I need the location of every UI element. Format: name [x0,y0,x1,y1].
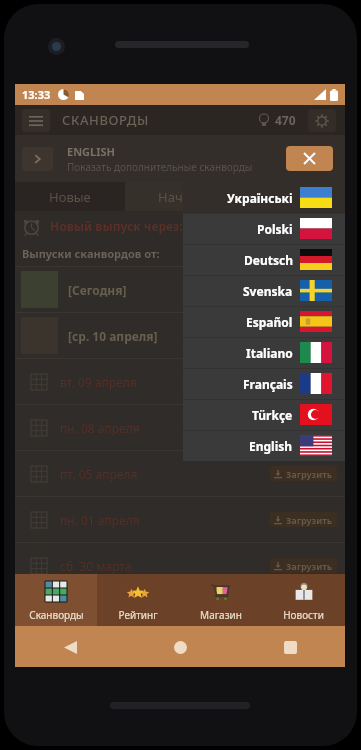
button[interactable]: Polski [183,213,345,244]
button[interactable]: [ср. 10 апреля] [15,313,345,358]
button[interactable]: [Сегодня] [15,267,345,312]
staticText: Все [279,188,301,206]
button[interactable]: Back [55,632,85,662]
staticText: Новости [283,608,324,622]
staticText: 470 [275,112,296,128]
staticText: пн. 01 апреля [60,512,140,528]
staticText: пт. 05 апреля [60,466,138,482]
staticText: Polski [257,221,293,237]
staticText: ENGLISH [67,144,115,159]
button[interactable]: пн. 01 апреля [15,497,345,542]
staticText: Загрузить [286,422,333,434]
button[interactable]: Все [235,182,345,211]
button[interactable]: Загрузить [270,466,337,481]
button[interactable]: Türkçe [183,399,345,430]
button[interactable]: сб. 30 марта [15,543,345,588]
staticText: Svenska [243,283,293,299]
staticText: Español [246,314,293,330]
staticText: вт. 09 апреля [60,374,137,390]
staticText: СКАНВОРДЫ [62,111,149,129]
staticText: 13:33 [22,87,51,102]
button[interactable]: Магазин [179,574,262,626]
staticText: Загрузить [286,560,333,572]
staticText: [ср. 10 апреля] [68,328,158,344]
staticText: Français [243,376,293,392]
button[interactable]: Загрузить [270,558,337,573]
button[interactable]: Deutsch [183,244,345,275]
staticText: Магазин [200,608,242,622]
staticText: Новые [49,188,91,206]
button[interactable]: Italiano [183,337,345,368]
button[interactable]: Загрузить [270,420,337,435]
button[interactable]: Сканворды [15,574,97,626]
button[interactable]: Рейтинг [97,574,179,626]
staticText: Türkçe [252,407,293,423]
staticText: Українські [227,190,293,206]
button[interactable]: ENGLISH [15,135,345,182]
button[interactable]: Загрузить [270,512,337,527]
staticText: English [249,438,293,454]
staticText: Рейтинг [118,608,158,622]
staticText: Italiano [246,345,293,361]
button[interactable]: Svenska [183,275,345,306]
button[interactable]: Español [183,306,345,337]
button[interactable]: English [183,430,345,461]
staticText: Загрузить [286,514,333,526]
button[interactable]: Начать [125,182,235,211]
button[interactable]: Close [286,146,333,171]
staticText: Новый выпуск через: [50,218,183,234]
button[interactable]: Menu [22,109,50,132]
staticText: Показать дополнительные сканворды [67,160,253,174]
staticText: Начать [158,188,203,206]
staticText: Выпуски сканвордов от: [22,246,160,261]
staticText: сб. 30 марта [60,558,132,574]
button[interactable]: Recents [275,632,305,662]
button[interactable]: вт. 09 апреля [15,359,345,404]
button[interactable]: Загрузить [270,374,337,389]
button[interactable]: Українські [183,182,345,213]
staticText: Загрузить [286,468,333,480]
button[interactable]: пт. 05 апреля [15,451,345,496]
button[interactable]: Новости [262,574,345,626]
button[interactable]: Settings [308,109,336,132]
button[interactable]: Home [165,632,195,662]
staticText: [Сегодня] [68,282,127,298]
staticText: Deutsch [244,252,293,268]
button[interactable]: 470 [256,112,298,128]
staticText: Сканворды [29,608,84,622]
staticText: пн. 08 апреля [60,420,140,436]
button[interactable]: Новые [15,182,125,211]
staticText: Загрузить [286,376,333,388]
button[interactable]: пн. 08 апреля [15,405,345,450]
button[interactable]: Français [183,368,345,399]
